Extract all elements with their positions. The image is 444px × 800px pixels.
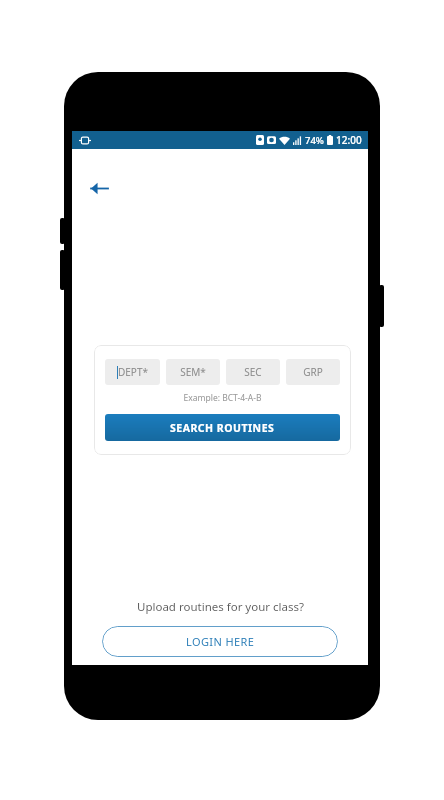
staticText: SEM* (180, 365, 206, 379)
staticText: SEARCH ROUTINES (170, 421, 275, 435)
button[interactable]: SEARCH ROUTINES (105, 414, 340, 441)
staticText: Example: BCT-4-A-B (105, 392, 340, 404)
staticText: 74% (305, 134, 324, 147)
button[interactable]: DEPT* (105, 359, 160, 385)
button[interactable]: LOGIN HERE (102, 626, 338, 657)
staticText: LOGIN HERE (186, 634, 255, 649)
button[interactable]: SEC (226, 359, 280, 385)
staticText: Upload routines for your class? (137, 599, 304, 615)
button[interactable]: SEM* (166, 359, 220, 385)
staticText: GRP (303, 365, 323, 379)
button[interactable]: Back (78, 167, 120, 209)
staticText: 12:00 (336, 133, 362, 147)
staticText: SEC (244, 365, 262, 379)
staticText: DEPT* (118, 365, 148, 379)
button[interactable]: GRP (286, 359, 340, 385)
